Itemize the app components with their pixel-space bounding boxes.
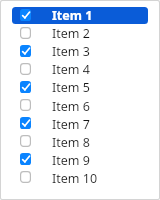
staticText: Item 7 (52, 116, 90, 132)
button[interactable]: Item 1 (12, 7, 148, 24)
staticText: Item 8 (52, 134, 90, 150)
button[interactable]: Item 6 (12, 97, 148, 114)
button[interactable]: Item 5 (12, 79, 148, 96)
staticText: Item 5 (52, 79, 90, 96)
button[interactable]: Item 8 (12, 133, 148, 150)
button[interactable]: Item 3 (12, 43, 148, 60)
button[interactable]: Item 4 (12, 61, 148, 78)
button[interactable]: Item 2 (12, 25, 148, 42)
staticText: Item 10 (52, 170, 98, 187)
staticText: Item 9 (52, 152, 90, 169)
staticText: Item 4 (52, 61, 90, 78)
staticText: Item 3 (52, 43, 90, 60)
button[interactable]: Item 9 (12, 152, 148, 169)
staticText: Item 1 (52, 7, 93, 24)
staticText: Item 6 (52, 98, 90, 114)
staticText: Item 2 (52, 25, 90, 42)
button[interactable]: Item 7 (12, 115, 148, 132)
button[interactable]: Item 10 (12, 170, 148, 187)
